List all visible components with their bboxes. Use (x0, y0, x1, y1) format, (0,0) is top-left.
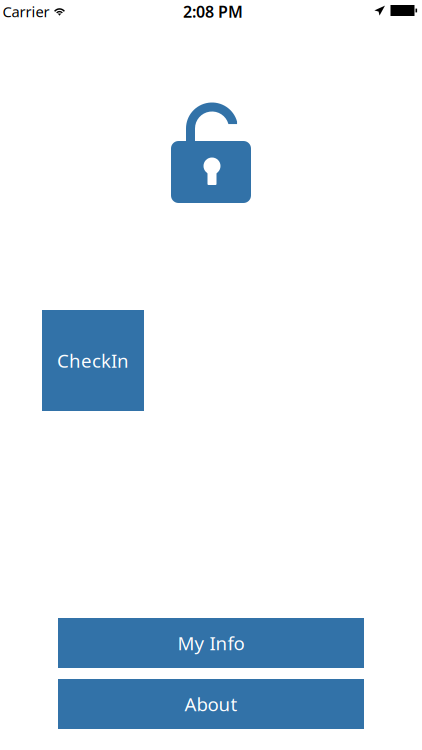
staticText: CheckIn (57, 348, 129, 373)
button[interactable]: About (58, 679, 364, 729)
button[interactable]: My Info (58, 618, 364, 668)
staticText: About (184, 692, 237, 716)
staticText: 2:08 PM (183, 1, 243, 22)
staticText: Carrier (2, 2, 49, 21)
button[interactable]: CheckIn (42, 310, 144, 411)
staticText: My Info (177, 631, 244, 655)
